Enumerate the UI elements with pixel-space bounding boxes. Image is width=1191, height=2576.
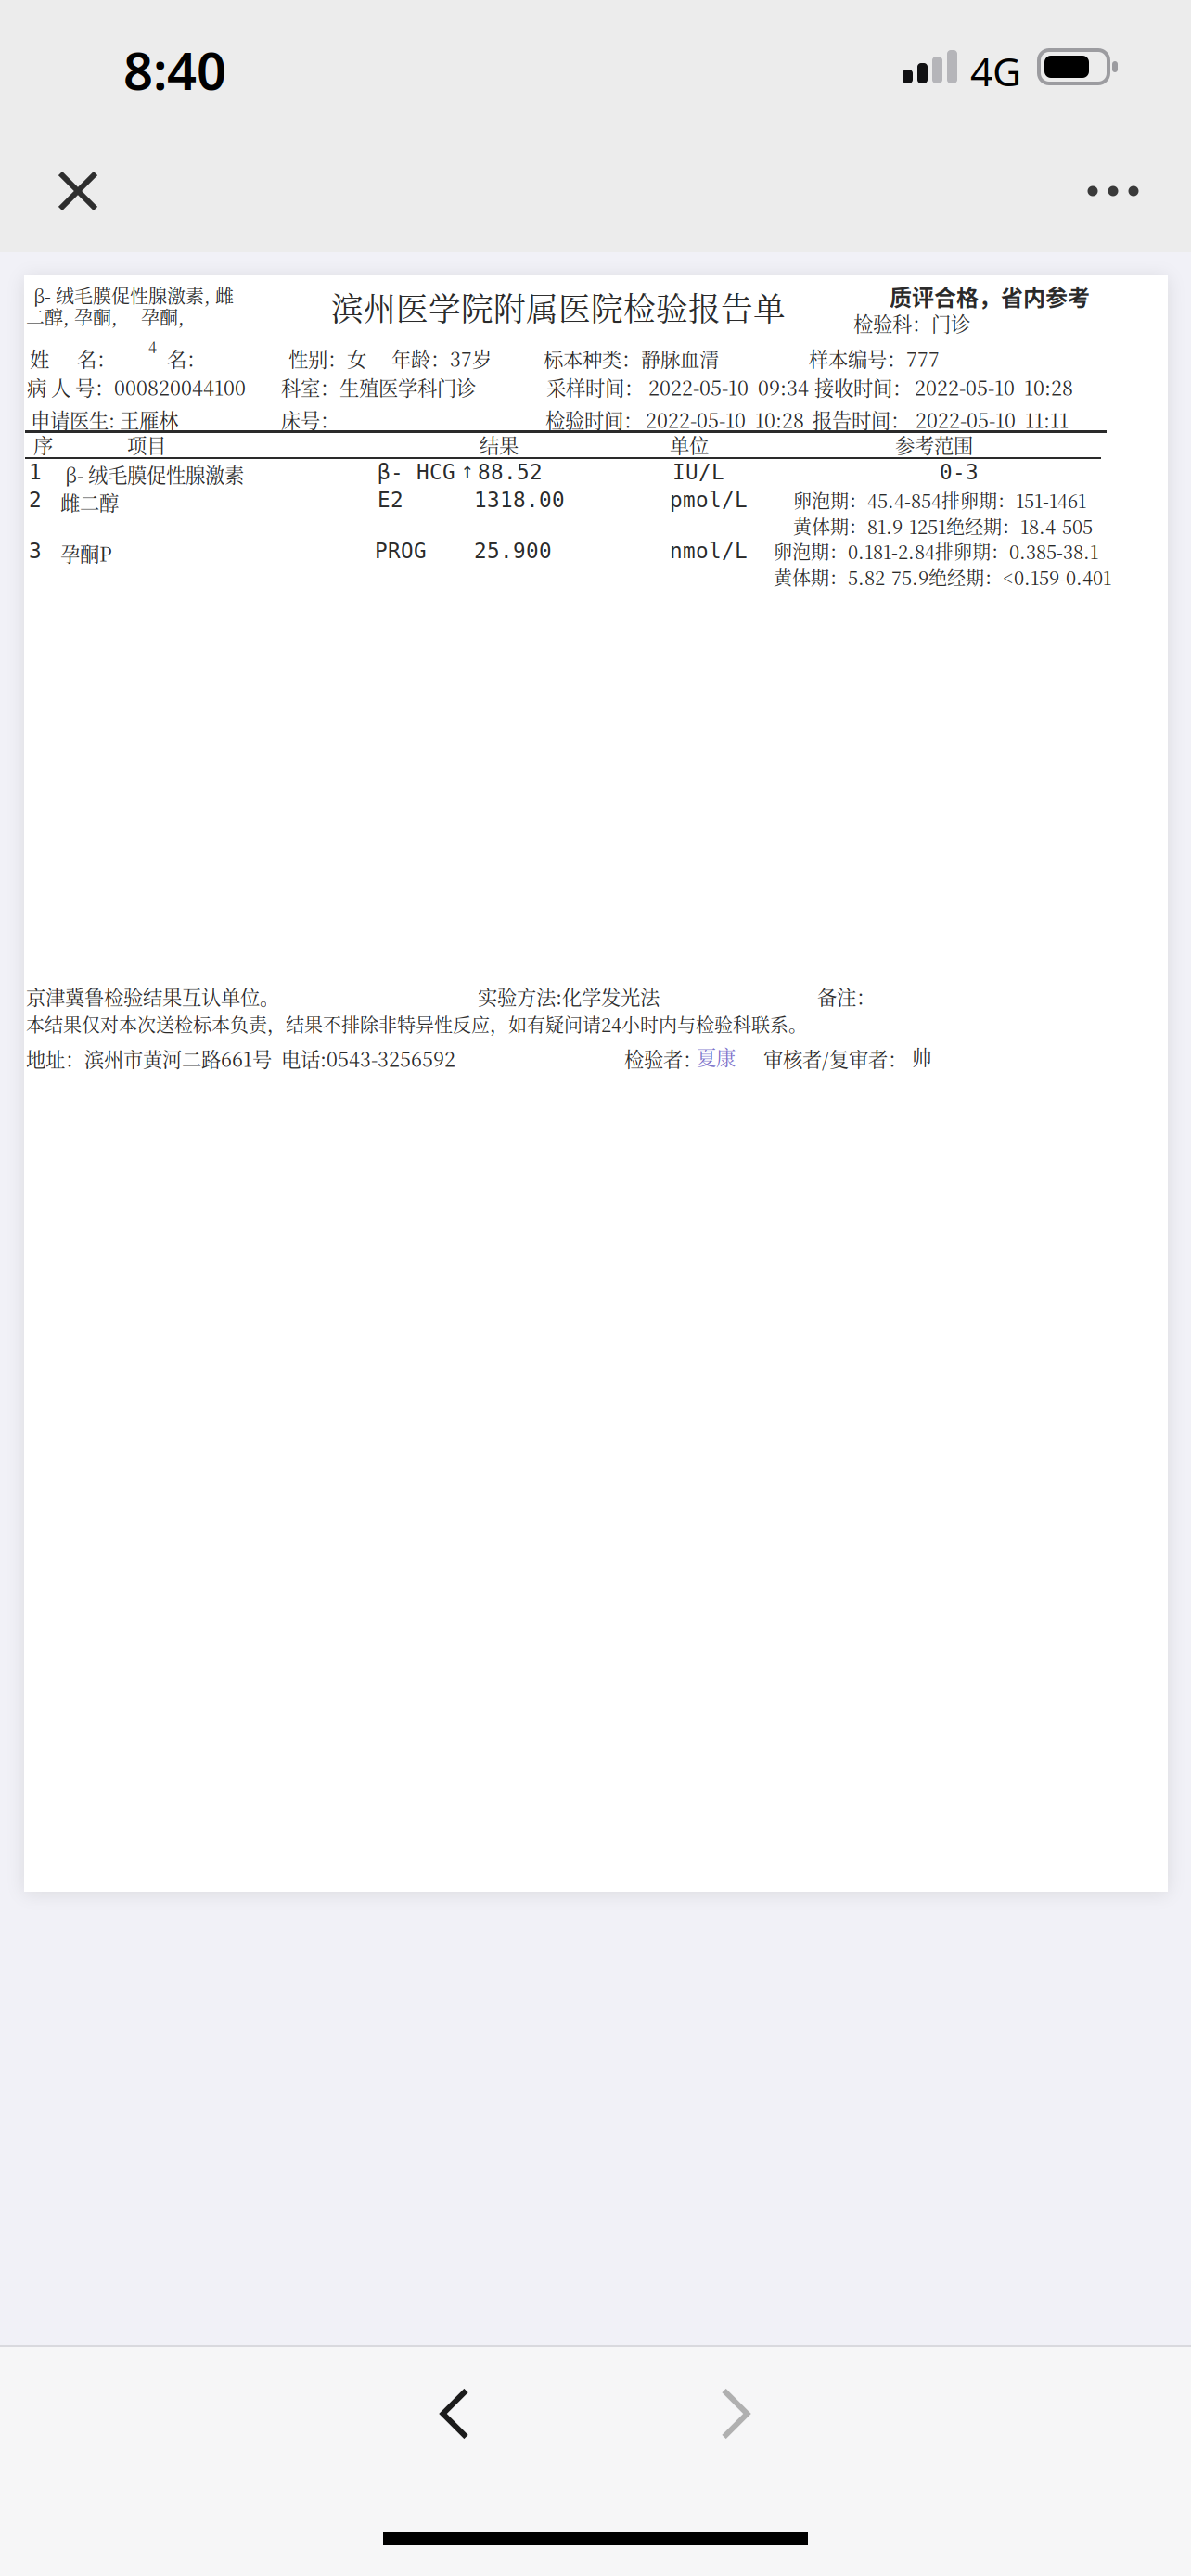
button[interactable]: Close xyxy=(24,140,132,242)
staticText: 卵泡期：0.181-2.84排卵期：0.385-38.1 xyxy=(774,538,1098,564)
staticText: β- 绒毛膜促性腺激素 xyxy=(65,460,244,488)
staticText: β- HCG xyxy=(378,460,455,484)
staticText: PROG xyxy=(375,539,427,563)
staticText: β- 绒毛膜促性腺激素, 雌 xyxy=(33,282,234,309)
staticText: 性别：女 xyxy=(288,344,366,372)
staticText: 接收时间： xyxy=(814,373,912,401)
staticText: 京津冀鲁检验结果互认单位。 xyxy=(26,982,279,1010)
staticText: 检验科：门诊 xyxy=(853,309,970,337)
staticText: 样本编号：777 xyxy=(809,344,940,372)
staticText: 年龄：37岁 xyxy=(391,344,492,372)
staticText: 2 xyxy=(29,488,42,512)
staticText: 床号： xyxy=(281,405,339,434)
staticText: 2022-05-10 11:11 xyxy=(916,405,1069,434)
staticText: E2 xyxy=(378,488,403,512)
staticText: 检验时间： xyxy=(545,405,643,434)
staticText: 病 人 号：000820044100 xyxy=(27,373,246,401)
staticText: 项目 xyxy=(127,430,166,459)
button[interactable]: More options xyxy=(1059,140,1167,242)
button[interactable]: Next page xyxy=(680,2360,791,2468)
staticText: 25.900 xyxy=(474,539,552,563)
staticText: 单位 xyxy=(670,430,709,459)
staticText: 参考范围 xyxy=(895,430,973,459)
staticText: 审核者/复审者： xyxy=(763,1044,907,1073)
staticText: 1 xyxy=(29,460,42,484)
staticText: 检验者： xyxy=(624,1044,702,1073)
staticText: 结果 xyxy=(480,430,519,459)
staticText: 88.52 xyxy=(478,460,543,484)
staticText: 科室：生殖医学科门诊 xyxy=(281,373,476,401)
staticText: 备注： xyxy=(817,982,876,1010)
staticText: 地址：滨州市黄河二路661号 电话:0543-3256592 xyxy=(26,1044,455,1073)
button[interactable]: Previous page xyxy=(399,2360,510,2468)
staticText: 本结果仅对本次送检标本负责，结果不排除非特异性反应，如有疑问请24小时内与检验科… xyxy=(26,1011,807,1037)
staticText: pmol/L xyxy=(670,488,748,512)
staticText: 实验方法:化学发光法 xyxy=(478,982,660,1010)
staticText: 二醇, 孕酮, 孕酮, xyxy=(26,303,185,330)
staticText: 滨州医学院附属医院检验报告单 xyxy=(331,284,786,330)
staticText: 0-3 xyxy=(940,460,979,484)
staticText: 黄体期：5.82-75.9绝经期：<0.159-0.401 xyxy=(774,564,1111,590)
staticText: 序 xyxy=(33,430,53,459)
staticText: nmol/L xyxy=(670,539,748,563)
staticText: 姓 名： xyxy=(30,344,116,372)
staticText: 4 xyxy=(148,336,157,357)
staticText: IU/L xyxy=(672,460,724,484)
staticText: 1318.00 xyxy=(474,488,565,512)
staticText: 夏康 xyxy=(697,1042,736,1071)
staticText: 帅 xyxy=(912,1042,931,1071)
staticText: 报告时间： xyxy=(813,405,910,434)
staticText: 雌二醇 xyxy=(60,488,119,516)
staticText: 黄体期：81.9-1251绝经期：18.4-505 xyxy=(793,513,1093,539)
staticText: 2022-05-10 09:34 xyxy=(648,373,809,401)
staticText: 名： xyxy=(167,344,206,372)
staticText: 质评合格，省内参考 xyxy=(890,280,1090,312)
staticText: 2022-05-10 10:28 xyxy=(915,373,1073,401)
staticText: ↑ xyxy=(461,458,474,483)
staticText: 卵泡期：45.4-854排卵期：151-1461 xyxy=(793,487,1086,513)
staticText: 申请医生: 王雁林 xyxy=(31,405,178,434)
staticText: 孕酮P xyxy=(60,539,112,567)
staticText: 标本种类：静脉血清 xyxy=(544,344,719,372)
staticText: 采样时间： xyxy=(546,373,644,401)
staticText: 2022-05-10 10:28 xyxy=(646,405,804,434)
staticText: 4G xyxy=(970,45,1021,97)
staticText: 3 xyxy=(29,539,42,563)
staticText: 8:40 xyxy=(123,35,226,104)
